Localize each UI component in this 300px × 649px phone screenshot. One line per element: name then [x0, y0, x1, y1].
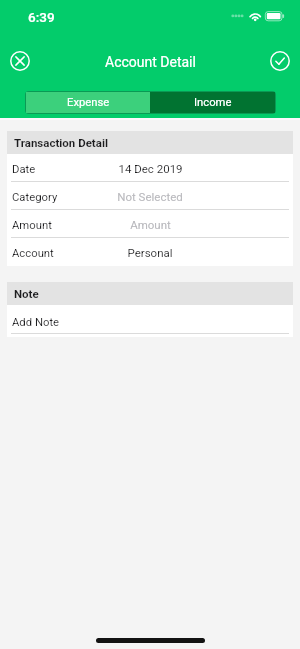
button[interactable]: Save — [266, 47, 294, 75]
staticText: Note — [14, 287, 39, 300]
staticText: 6:39 — [28, 9, 55, 25]
staticText: Date — [12, 163, 36, 176]
staticText: Category — [12, 191, 58, 204]
button[interactable]: Close — [6, 47, 34, 75]
button[interactable]: Expense — [26, 92, 150, 113]
staticText: Amount — [130, 218, 171, 231]
staticText: Amount — [12, 219, 52, 232]
button[interactable]: Income — [150, 92, 275, 113]
staticText: Account Detail — [105, 54, 196, 70]
button[interactable]: Date — [7, 154, 293, 182]
staticText: Income — [194, 96, 232, 109]
button[interactable]: Category — [7, 182, 293, 210]
staticText: Personal — [127, 246, 173, 259]
button[interactable]: Add Note — [7, 305, 293, 337]
staticText: Add Note — [12, 316, 60, 329]
staticText: Not Selected — [117, 190, 183, 203]
staticText: Expense — [67, 96, 110, 109]
staticText: 14 Dec 2019 — [118, 162, 183, 175]
staticText: Transaction Detail — [14, 136, 108, 149]
button[interactable]: Account — [7, 238, 293, 266]
staticText: Account — [12, 247, 54, 260]
button[interactable]: Amount — [7, 210, 293, 238]
